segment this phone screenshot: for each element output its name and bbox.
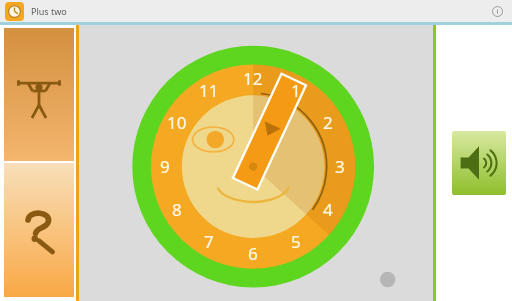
staticText: 6 [248,242,258,265]
staticText: 3 [335,155,345,178]
button[interactable]: Plus two app icon [5,2,24,21]
button[interactable]: Timer clock [79,25,433,301]
staticText: 10 [167,111,187,134]
staticText: Plus two [31,5,67,17]
staticText: 7 [204,230,214,253]
button[interactable]: Exercise [4,28,74,161]
button[interactable]: Sound [452,131,506,195]
staticText: 8 [172,198,182,221]
staticText: 11 [199,79,219,102]
staticText: 1 [291,79,301,102]
staticText: 5 [291,230,301,253]
staticText: 4 [323,198,333,221]
staticText: 9 [160,155,170,178]
staticText: 2 [323,111,333,134]
staticText: 12 [243,67,263,90]
button[interactable]: Info [490,4,505,19]
button[interactable]: Help [4,163,74,297]
